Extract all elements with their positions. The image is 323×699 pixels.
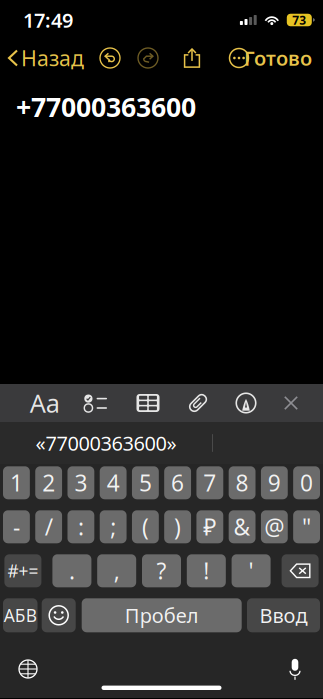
staticText: Назад (21, 44, 84, 72)
staticText: 0 (300, 468, 313, 498)
staticText: Ввод (259, 602, 307, 629)
button[interactable]: ₽ (196, 510, 223, 543)
staticText: ' (249, 556, 254, 586)
button[interactable]: 4 (100, 466, 126, 499)
button[interactable]: Format (24, 384, 66, 422)
button[interactable]: - (3, 510, 30, 543)
button[interactable]: Dictate (275, 652, 315, 686)
button[interactable]: 7 (196, 466, 223, 499)
button[interactable]: 5 (132, 466, 159, 499)
staticText: ! (203, 556, 209, 586)
button[interactable]: Markup (225, 384, 267, 422)
button[interactable]: 3 (67, 466, 94, 499)
button[interactable]: Backspace (282, 554, 319, 587)
button[interactable]: «77000363600» (0, 422, 212, 464)
button[interactable]: Redo (131, 39, 165, 77)
staticText: 8 (236, 468, 249, 498)
staticText: 73 (292, 12, 306, 28)
staticText: Aa (30, 386, 60, 420)
staticText: . (69, 556, 75, 586)
button[interactable]: 8 (229, 466, 255, 499)
staticText: 4 (107, 468, 120, 498)
button[interactable]: ) (164, 510, 191, 543)
button[interactable]: Share (175, 39, 209, 77)
button[interactable]: Switch keyboard (8, 652, 48, 686)
button[interactable]: " (293, 510, 320, 543)
staticText: 9 (268, 468, 281, 498)
staticText: , (114, 556, 120, 586)
staticText: & (234, 512, 251, 542)
button[interactable]: Ввод (247, 598, 320, 632)
staticText: «77000363600» (35, 430, 176, 456)
button[interactable]: @ (261, 510, 288, 543)
button[interactable]: АБВ (3, 598, 37, 632)
staticText: 1 (10, 468, 23, 498)
button[interactable]: ' (232, 554, 271, 587)
staticText: 17:49 (23, 7, 73, 33)
staticText: 7 (203, 468, 216, 498)
staticText: АБВ (4, 604, 37, 627)
button[interactable]: ( (132, 510, 159, 543)
button[interactable]: #+= (4, 554, 41, 587)
staticText: ; (110, 512, 116, 542)
button[interactable]: 0 (293, 466, 320, 499)
staticText: / (45, 512, 53, 542)
button[interactable]: , (97, 554, 136, 587)
staticText: : (78, 512, 84, 542)
staticText: 3 (74, 468, 87, 498)
staticText: @ (264, 512, 284, 542)
button[interactable]: / (35, 510, 62, 543)
button[interactable]: Emoji (42, 598, 76, 632)
staticText: ₽ (203, 512, 216, 542)
button[interactable]: Checklist (75, 384, 117, 422)
button[interactable]: ! (187, 554, 226, 587)
button[interactable]: Close (270, 384, 312, 422)
staticText: ? (156, 556, 166, 586)
button[interactable]: 9 (261, 466, 288, 499)
staticText: Пробел (125, 602, 199, 629)
staticText: 5 (139, 468, 152, 498)
button[interactable]: Attach (177, 384, 219, 422)
staticText: ( (142, 512, 149, 542)
button[interactable]: Назад (0, 39, 90, 77)
button[interactable]: ? (142, 554, 181, 587)
staticText: ) (174, 512, 181, 542)
staticText: Готово (244, 45, 312, 71)
staticText: - (13, 512, 20, 542)
button[interactable]: & (229, 510, 255, 543)
button[interactable]: Готово (236, 39, 323, 77)
staticText: 6 (171, 468, 184, 498)
button[interactable]: : (67, 510, 94, 543)
button[interactable]: 6 (164, 466, 191, 499)
staticText: #+= (7, 559, 38, 582)
staticText: 2 (42, 468, 55, 498)
button[interactable]: Undo (93, 39, 127, 77)
button[interactable]: 2 (35, 466, 62, 499)
button[interactable]: . (52, 554, 91, 587)
button[interactable]: More (222, 39, 256, 77)
staticText: " (302, 512, 311, 542)
button[interactable]: Пробел (82, 598, 242, 632)
button[interactable]: Table (127, 384, 169, 422)
button[interactable]: ; (100, 510, 126, 543)
staticText: +77000363600 (16, 89, 196, 124)
button[interactable]: 1 (3, 466, 30, 499)
